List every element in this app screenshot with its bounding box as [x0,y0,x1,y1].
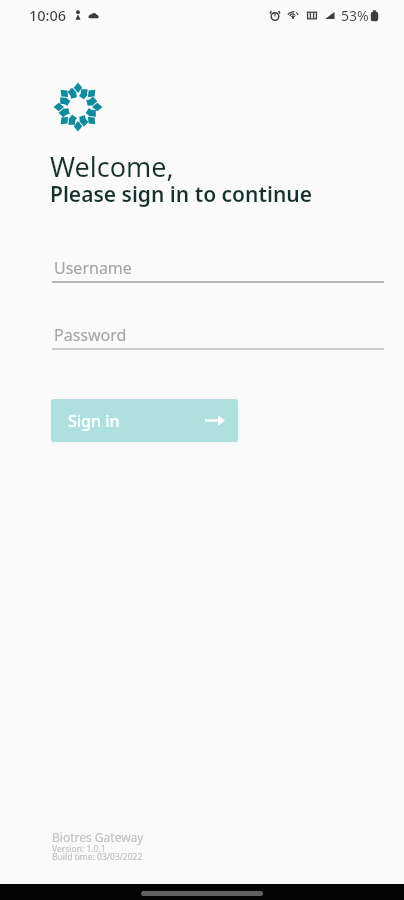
staticText: 53% [341,6,369,25]
staticText: Username [54,257,132,279]
staticText: Build time: 03/03/2022 [52,851,143,863]
staticText: Welcome, [50,148,174,185]
button[interactable]: Password [52,324,384,350]
staticText: Version: 1.0.1 [52,843,106,855]
button[interactable]: Sign in [51,399,238,442]
staticText: Sign in [68,410,120,432]
staticText: Please sign in to continue [50,180,313,209]
button[interactable]: Home [141,891,263,896]
button[interactable]: Username [52,257,384,283]
staticText: 10:06 [29,5,67,25]
staticText: Biotres Gateway [52,829,144,845]
staticText: Password [54,324,127,346]
other: Biotres logo [52,81,104,133]
